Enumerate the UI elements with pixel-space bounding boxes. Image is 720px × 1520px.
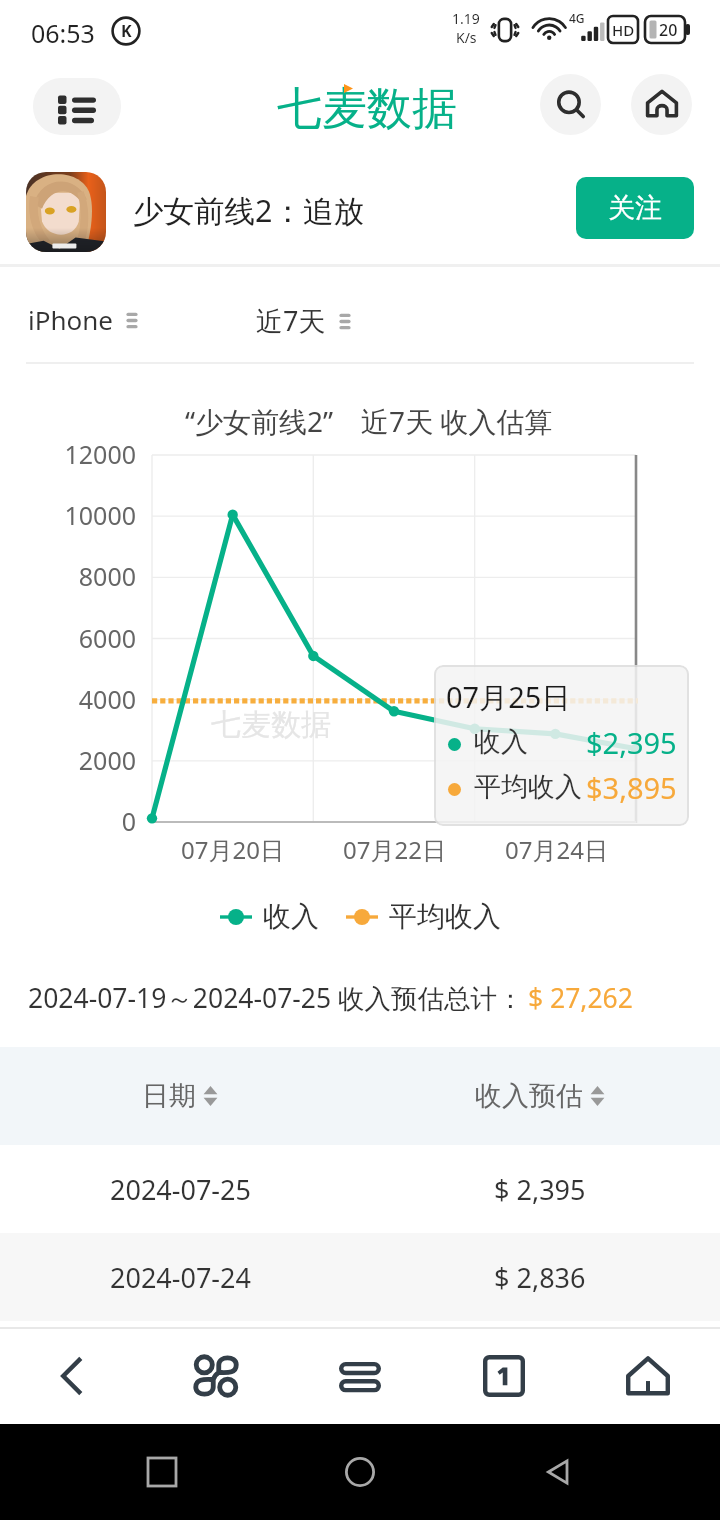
button[interactable]: Home	[330, 1424, 390, 1520]
staticText: 6000	[78, 621, 136, 655]
button[interactable]: 2024-07-24	[0, 1233, 720, 1321]
button[interactable]: 近7天	[256, 302, 352, 339]
staticText: 0	[121, 804, 136, 838]
staticText: 07月24日	[505, 833, 608, 866]
staticText: 收入预估	[475, 1079, 583, 1113]
staticText: 1.19	[452, 9, 480, 28]
staticText: 2024-07-19～2024-07-25 收入预估总计：	[28, 980, 524, 1016]
staticText: 2024-07-24	[110, 1259, 251, 1296]
staticText: 4000	[78, 682, 136, 716]
staticText: 2000	[78, 743, 136, 777]
staticText: 07月25日	[446, 677, 571, 717]
staticText: $ 2,395	[494, 1171, 586, 1208]
staticText: 近7天	[256, 302, 326, 339]
button[interactable]: Back	[528, 1424, 588, 1520]
button[interactable]: App icon	[26, 172, 106, 252]
staticText: HD	[612, 20, 635, 40]
staticText: 七麦数据	[211, 706, 331, 744]
staticText: 10000	[64, 498, 136, 532]
button[interactable]: 日期	[0, 1047, 360, 1145]
staticText: K/s	[456, 28, 477, 47]
staticText: K	[121, 20, 132, 42]
button[interactable]: Windows	[288, 1327, 432, 1424]
button[interactable]: Tabs	[432, 1327, 576, 1424]
staticText: 4G	[569, 10, 585, 26]
button[interactable]: Recents	[132, 1424, 192, 1520]
staticText: 8000	[78, 559, 136, 593]
staticText: 06:53	[31, 16, 95, 50]
staticText: 平均收入	[474, 770, 582, 804]
button[interactable]: Shortcuts	[144, 1327, 288, 1424]
staticText: 20	[659, 19, 678, 41]
staticText: 12000	[64, 437, 136, 471]
staticText: 日期	[142, 1079, 196, 1113]
button[interactable]: Home	[631, 74, 692, 135]
staticText: $ 27,262	[528, 980, 633, 1016]
staticText: 关注	[608, 191, 662, 225]
button[interactable]: 收入预估	[360, 1047, 720, 1145]
staticText: 平均收入	[389, 899, 501, 934]
button[interactable]: 2024-07-25	[0, 1145, 720, 1233]
button[interactable]: Home	[576, 1327, 720, 1424]
staticText: 2024-07-25	[110, 1171, 251, 1208]
staticText: 收入	[474, 725, 528, 759]
button[interactable]: Menu	[33, 78, 121, 135]
staticText: 07月22日	[343, 833, 446, 866]
staticText: iPhone	[28, 302, 113, 337]
button[interactable]: Back	[0, 1327, 144, 1424]
staticText: 收入	[263, 899, 319, 934]
button[interactable]: iPhone	[28, 302, 139, 337]
staticText: $2,395	[586, 723, 677, 762]
staticText: 07月20日	[181, 833, 284, 866]
staticText: $3,895	[586, 768, 677, 807]
staticText: 少女前线2：追放	[133, 189, 364, 231]
button[interactable]: Search	[540, 74, 601, 135]
button[interactable]: 关注	[576, 177, 694, 239]
staticText: $ 2,836	[494, 1259, 586, 1296]
staticText: 七麦数据	[277, 81, 457, 138]
staticText: “少女前线2” 近7天 收入估算	[185, 402, 553, 440]
